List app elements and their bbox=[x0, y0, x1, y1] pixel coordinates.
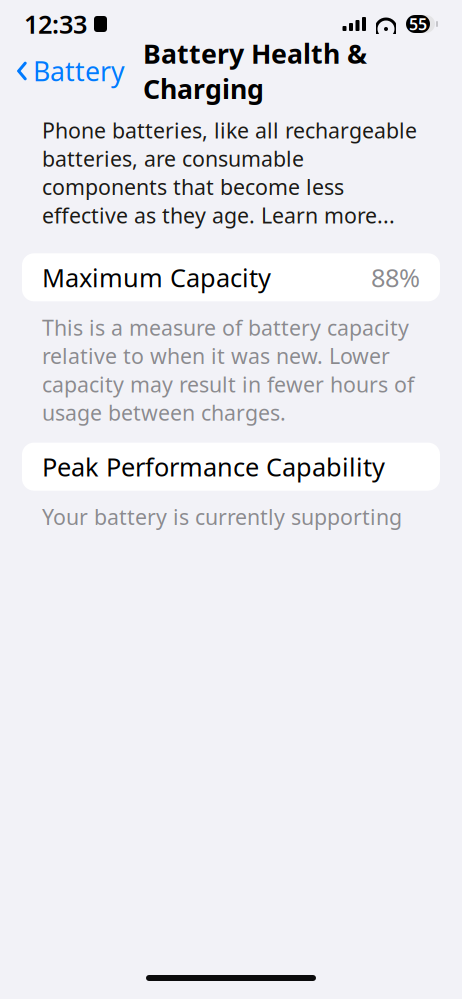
button[interactable]: Peak Performance Capability bbox=[22, 443, 440, 491]
staticText: Battery Health & Charging bbox=[143, 36, 367, 106]
staticText: 55 bbox=[409, 13, 427, 35]
staticText: Peak Performance Capability bbox=[42, 450, 385, 483]
staticText: Your battery is currently supporting nor… bbox=[42, 503, 402, 559]
staticText: This is a measure of battery capacity re… bbox=[42, 313, 414, 427]
button[interactable]: Battery bbox=[16, 53, 125, 89]
staticText: Phone batteries, like all rechargeable b… bbox=[42, 116, 417, 229]
staticText: Maximum Capacity bbox=[42, 260, 271, 294]
staticText: 88% bbox=[371, 260, 420, 294]
staticText: Battery bbox=[33, 53, 125, 89]
staticText: 12:33 bbox=[24, 7, 87, 41]
button[interactable]: Maximum Capacity bbox=[22, 253, 440, 301]
